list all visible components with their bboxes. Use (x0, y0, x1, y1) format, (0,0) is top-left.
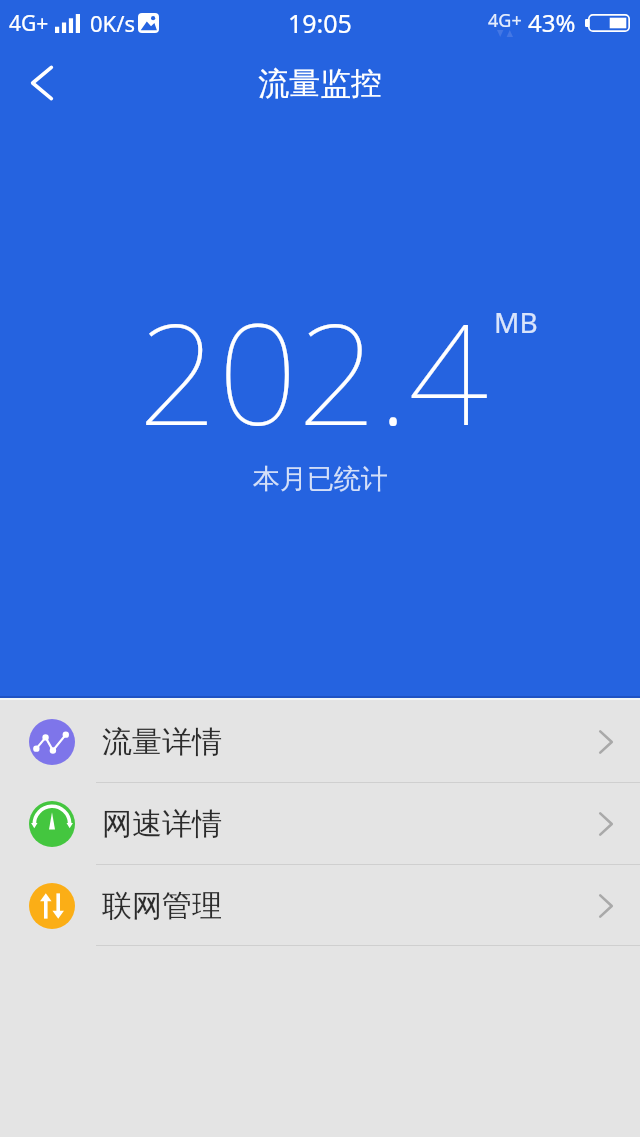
button[interactable]: 网速详情 (0, 783, 640, 865)
staticText: 联网管理 (102, 887, 222, 925)
staticText: 202.4 (138, 275, 489, 466)
staticText: 0K/s (90, 8, 135, 38)
staticText: 流量监控 (258, 64, 382, 103)
staticText: 本月已统计 (253, 462, 388, 496)
staticText: MB (494, 303, 538, 341)
button[interactable]: Back (14, 57, 70, 109)
staticText: 4G+ (488, 8, 522, 33)
staticText: 19:05 (288, 6, 352, 40)
staticText: 网速详情 (102, 805, 222, 843)
button[interactable]: 联网管理 (0, 865, 640, 946)
button[interactable]: 流量详情 (0, 700, 640, 783)
staticText: 流量详情 (102, 723, 222, 761)
staticText: 43% (528, 6, 576, 39)
staticText: 4G+ (9, 9, 49, 38)
